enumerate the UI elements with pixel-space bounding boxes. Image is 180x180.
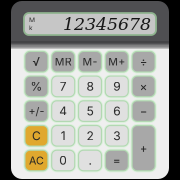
staticText: k xyxy=(29,24,33,32)
staticText: = xyxy=(113,153,121,168)
button[interactable]: C xyxy=(25,126,47,145)
staticText: M- xyxy=(82,55,97,68)
staticText: 9 xyxy=(113,79,120,94)
staticText: 7 xyxy=(60,79,67,94)
button[interactable]: 2 xyxy=(79,126,101,145)
button[interactable]: % xyxy=(25,77,47,96)
staticText: M xyxy=(29,16,35,24)
staticText: √ xyxy=(32,54,40,69)
staticText: C xyxy=(32,128,41,143)
staticText: % xyxy=(30,79,42,94)
staticText: − xyxy=(140,104,148,118)
staticText: ÷ xyxy=(140,54,148,69)
button[interactable]: ÷ xyxy=(133,52,154,71)
staticText: MR xyxy=(55,55,72,68)
button[interactable]: + xyxy=(133,126,154,170)
staticText: . xyxy=(88,153,91,168)
staticText: AC xyxy=(29,154,44,167)
button[interactable]: × xyxy=(133,77,154,96)
button[interactable]: M+ xyxy=(106,52,128,71)
button[interactable]: 9 xyxy=(106,77,128,96)
staticText: 2 xyxy=(86,128,93,143)
staticText: +/- xyxy=(28,105,44,117)
staticText: 12345678 xyxy=(63,14,151,34)
button[interactable]: 3 xyxy=(106,126,128,145)
staticText: × xyxy=(140,79,148,94)
staticText: M+ xyxy=(108,55,125,68)
button[interactable]: 8 xyxy=(79,77,101,96)
button[interactable]: 4 xyxy=(52,101,74,121)
staticText: 0 xyxy=(59,153,67,168)
button[interactable]: M- xyxy=(79,52,101,71)
staticText: 3 xyxy=(113,128,120,143)
button[interactable]: = xyxy=(106,151,128,170)
button[interactable]: +/- xyxy=(25,101,47,121)
button[interactable]: 5 xyxy=(79,101,101,121)
button[interactable]: 0 xyxy=(52,151,74,170)
staticText: 1 xyxy=(61,128,66,143)
staticText: + xyxy=(140,141,148,155)
staticText: 5 xyxy=(86,104,93,118)
staticText: 8 xyxy=(86,79,93,94)
button[interactable]: MR xyxy=(52,52,74,71)
button[interactable]: . xyxy=(79,151,101,170)
button[interactable]: √ xyxy=(25,52,47,71)
button[interactable]: 6 xyxy=(106,101,128,121)
button[interactable]: − xyxy=(133,101,154,121)
button[interactable]: 7 xyxy=(52,77,74,96)
button[interactable]: AC xyxy=(25,151,47,170)
button[interactable]: 1 xyxy=(52,126,74,145)
staticText: 6 xyxy=(113,104,120,118)
staticText: 4 xyxy=(59,104,67,118)
